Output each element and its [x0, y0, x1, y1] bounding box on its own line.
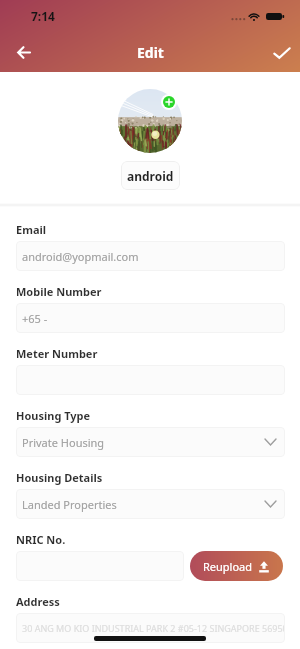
staticText: Meter Number [16, 346, 98, 361]
staticText: Address [16, 594, 60, 609]
staticText: Edit [137, 43, 164, 62]
button[interactable]: android [121, 161, 180, 190]
staticText: Reupload [203, 559, 253, 574]
button[interactable]: Back [6, 35, 41, 70]
button[interactable]: +65 - [16, 303, 285, 333]
staticText: +65 - [22, 311, 48, 326]
button[interactable]: Reupload [190, 551, 283, 581]
staticText: Private Housing [22, 435, 105, 450]
button[interactable]: 30 ANG MO KIO INDUSTRIAL PARK 2 #05-12 S… [16, 613, 285, 643]
staticText: Mobile Number [16, 284, 102, 299]
staticText: android [127, 168, 174, 184]
staticText: NRIC No. [16, 532, 66, 547]
staticText: 7:14 [31, 8, 55, 24]
staticText: 30 ANG MO KIO INDUSTRIAL PARK 2 #05-12 S… [22, 622, 285, 634]
button[interactable]: Save [264, 35, 299, 70]
button[interactable]: Landed Properties [16, 489, 285, 519]
staticText: Landed Properties [22, 497, 117, 512]
staticText: Email [16, 222, 47, 237]
staticText: Housing Details [16, 470, 103, 485]
button[interactable]: Change photo [163, 96, 175, 108]
staticText: Housing Type [16, 408, 91, 423]
staticText: android@yopmail.com [22, 249, 139, 264]
button[interactable]: Private Housing [16, 427, 285, 457]
button[interactable]: android@yopmail.com [16, 241, 285, 271]
button[interactable]: Profile photo [118, 89, 182, 153]
